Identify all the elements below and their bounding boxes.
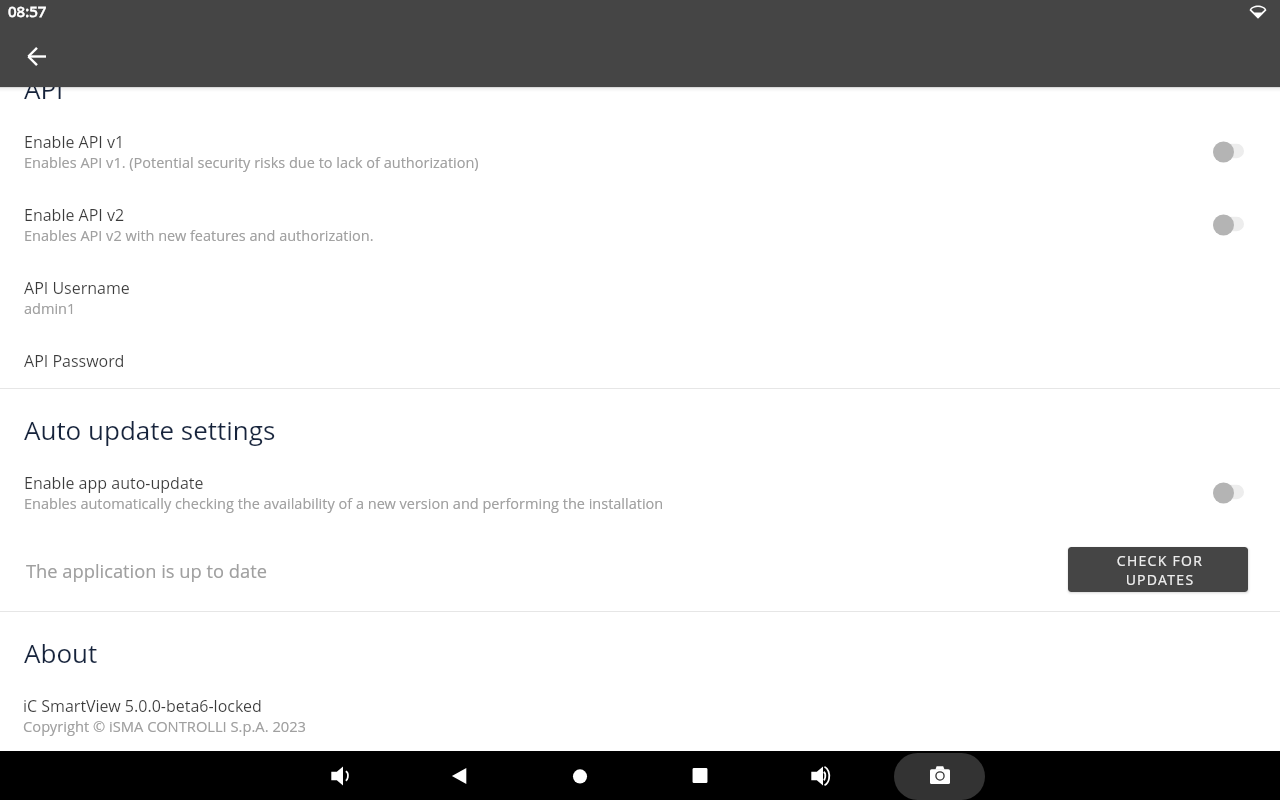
staticText: API — [24, 71, 64, 106]
staticText: API Password — [24, 350, 125, 372]
staticText: Enable API v1 — [24, 131, 125, 153]
button[interactable]: Enable API v1 — [0, 120, 1280, 182]
staticText: Enables automatically checking the avail… — [24, 494, 664, 514]
button[interactable]: Back — [435, 752, 483, 800]
button[interactable]: Recent apps — [676, 752, 724, 800]
staticText: 08:57 — [8, 1, 47, 21]
staticText: Enable API v2 — [24, 204, 125, 226]
button[interactable]: Home — [556, 752, 604, 800]
staticText: Copyright © iSMA CONTROLLI S.p.A. 2023 — [23, 716, 306, 736]
button[interactable]: Back — [15, 34, 59, 78]
button[interactable]: Screenshot — [894, 753, 985, 800]
staticText: API Username — [24, 277, 130, 299]
staticText: Enables API v1. (Potential security risk… — [24, 153, 479, 173]
staticText: Auto update settings — [24, 412, 276, 447]
staticText: About — [24, 635, 98, 670]
staticText: Enables API v2 with new features and aut… — [24, 226, 374, 246]
button[interactable]: Volume up — [799, 752, 847, 800]
button[interactable]: Toggle Enable app auto-update — [1199, 469, 1259, 517]
button[interactable]: CHECK FOR UPDATES — [1068, 547, 1248, 592]
button[interactable]: API Username — [0, 266, 1280, 328]
button[interactable]: Toggle Enable API v1 — [1199, 128, 1259, 176]
button[interactable]: API Password — [0, 339, 1280, 383]
staticText: The application is up to date — [26, 558, 267, 583]
staticText: CHECK FOR UPDATES — [1110, 551, 1210, 589]
staticText: admin1 — [24, 299, 76, 319]
button[interactable]: Enable app auto-update — [0, 461, 1280, 523]
staticText: iC SmartView 5.0.0-beta6-locked — [23, 695, 262, 717]
button[interactable]: Enable API v2 — [0, 193, 1280, 255]
button[interactable]: Toggle Enable API v2 — [1199, 201, 1259, 249]
button[interactable]: Volume down — [319, 752, 367, 800]
staticText: Enable app auto-update — [24, 472, 204, 494]
